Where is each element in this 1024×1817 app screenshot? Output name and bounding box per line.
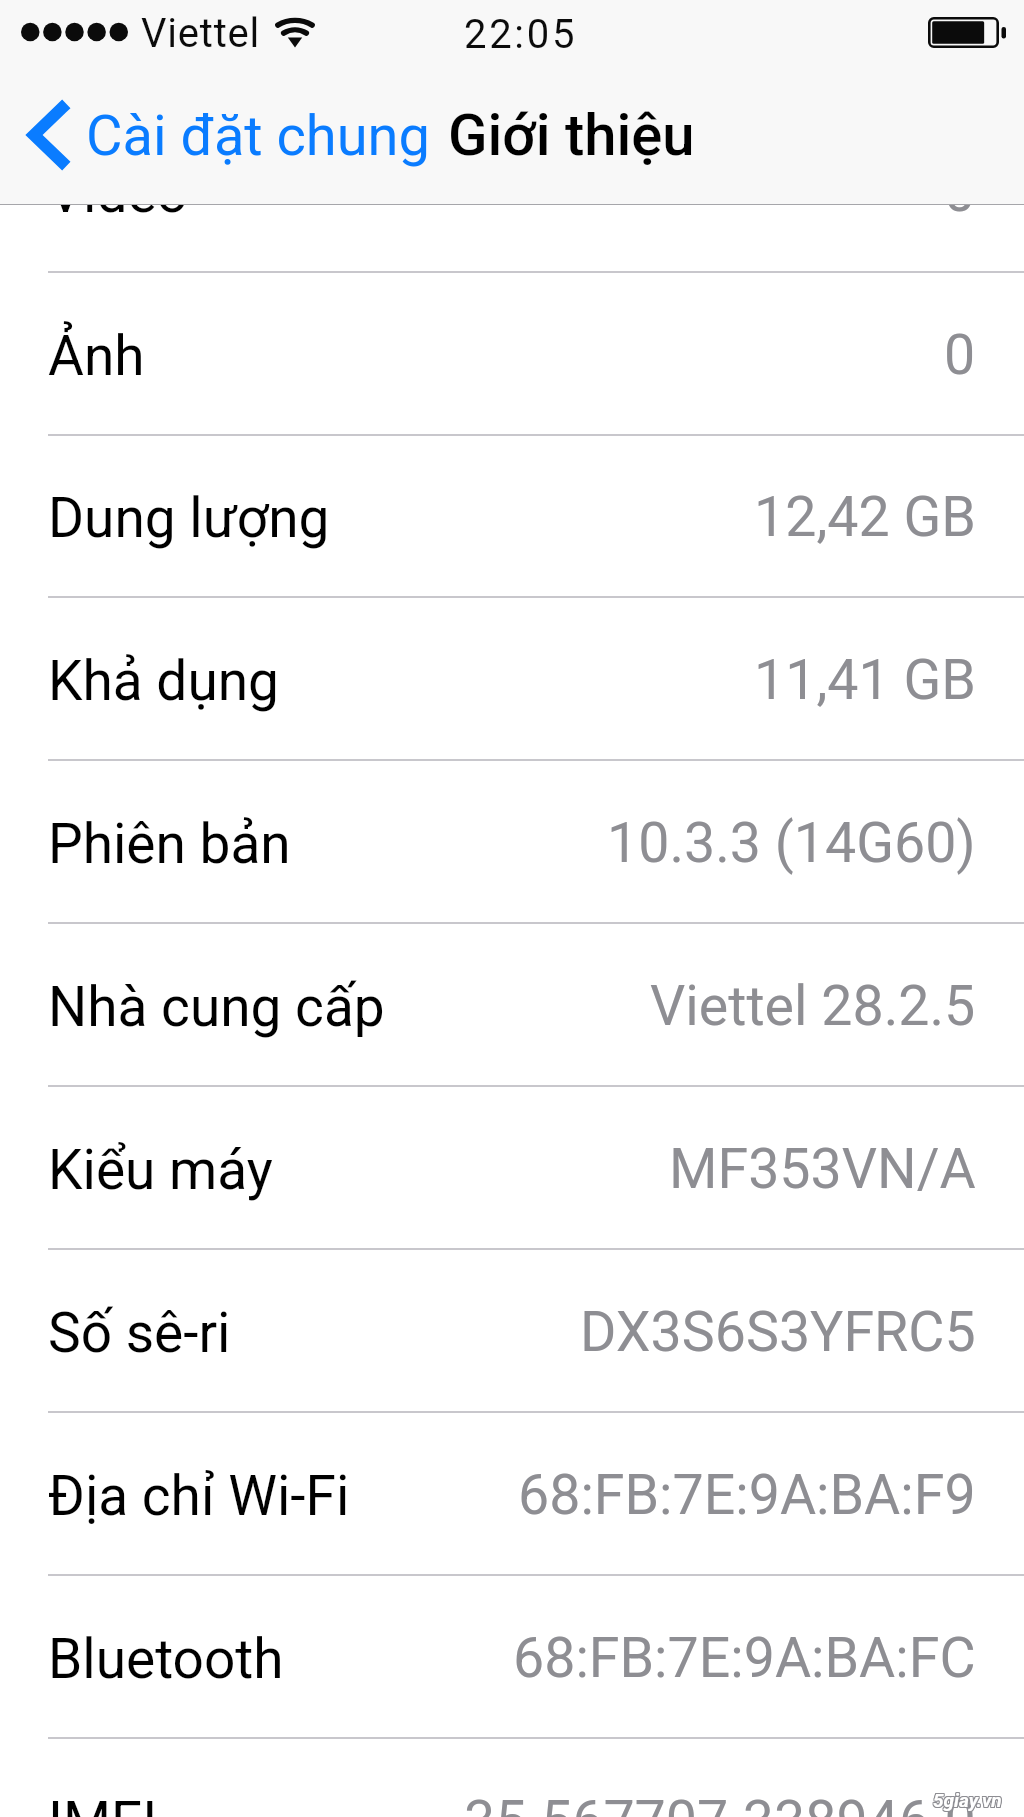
- button[interactable]: Bluetooth: [0, 1575, 1024, 1738]
- staticText: 0: [944, 160, 976, 225]
- staticText: Phiên bản: [48, 812, 291, 876]
- staticText: Viettel 28.2.5: [650, 974, 976, 1039]
- staticText: 22:05: [464, 11, 578, 58]
- staticText: Khả dụng: [48, 649, 279, 713]
- other: Battery: [928, 17, 1006, 48]
- staticText: IMEI: [48, 1790, 158, 1817]
- button[interactable]: Back to Cài đặt chung: [8, 99, 446, 181]
- staticText: Kiểu máy: [48, 1138, 273, 1202]
- staticText: 5giay.vn: [933, 1789, 1002, 1811]
- staticText: Giới thiệu: [448, 101, 695, 169]
- staticText: 5giay.vn: [933, 1788, 1002, 1810]
- staticText: Nhà cung cấp: [48, 975, 385, 1039]
- button[interactable]: Dung lượng: [0, 434, 1024, 597]
- button[interactable]: Địa chỉ Wi-Fi: [0, 1412, 1024, 1575]
- staticText: 5giay.vn: [934, 1790, 1003, 1812]
- staticText: 5giay.vn: [934, 1789, 1003, 1811]
- staticText: Video: [48, 161, 188, 225]
- staticText: Địa chỉ Wi-Fi: [48, 1464, 350, 1528]
- staticText: Ảnh: [48, 324, 145, 388]
- staticText: 5giay.vn: [932, 1788, 1001, 1810]
- other: Wi-Fi: [270, 14, 320, 50]
- staticText: Bluetooth: [48, 1627, 284, 1691]
- staticText: DX3S6S3YFRC5: [580, 1300, 976, 1365]
- staticText: 5giay.vn: [934, 1788, 1003, 1810]
- staticText: 10.3.3 (14G60): [607, 811, 976, 876]
- button[interactable]: Khả dụng: [0, 597, 1024, 760]
- button[interactable]: Ảnh: [0, 272, 1024, 435]
- staticText: 68:FB:7E:9A:BA:F9: [518, 1463, 976, 1528]
- staticText: 5giay.vn: [933, 1790, 1002, 1812]
- button[interactable]: Số sê-ri: [0, 1249, 1024, 1412]
- staticText: 12,42 GB: [754, 485, 976, 550]
- staticText: Cài đặt chung: [86, 103, 430, 169]
- staticText: 11,41 GB: [754, 648, 976, 713]
- button[interactable]: Video: [0, 109, 1024, 272]
- staticText: 0: [944, 323, 976, 388]
- button[interactable]: Kiểu máy: [0, 1086, 1024, 1249]
- other: Signal strength: [21, 23, 128, 41]
- staticText: 68:FB:7E:9A:BA:FC: [513, 1626, 976, 1691]
- staticText: 5giay.vn: [932, 1789, 1001, 1811]
- button[interactable]: IMEI: [0, 1738, 1024, 1817]
- staticText: 5giay.vn: [932, 1790, 1001, 1812]
- staticText: Viettel: [141, 10, 261, 57]
- staticText: MF353VN/A: [669, 1137, 976, 1202]
- staticText: Số sê-ri: [48, 1301, 231, 1365]
- button[interactable]: Phiên bản: [0, 760, 1024, 923]
- staticText: Dung lượng: [48, 486, 330, 550]
- button[interactable]: Nhà cung cấp: [0, 923, 1024, 1086]
- staticText: 35.567707.338946.0: [464, 1789, 976, 1817]
